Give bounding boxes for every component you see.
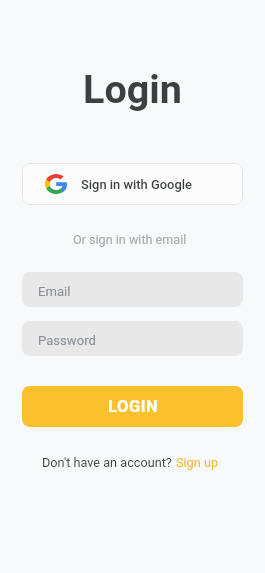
staticText: Or sign in with email — [73, 232, 187, 247]
staticText: Sign up — [176, 455, 219, 470]
button[interactable]: Password — [22, 321, 243, 356]
staticText: LOGIN — [108, 397, 159, 416]
staticText: Sign in with Google — [81, 177, 192, 192]
staticText: Email — [38, 284, 71, 299]
button[interactable]: Email — [22, 272, 243, 307]
staticText: Don't have an account? — [42, 455, 172, 470]
staticText: Password — [38, 333, 96, 348]
button[interactable]: Sign up — [176, 455, 219, 470]
button[interactable]: LOGIN — [22, 386, 243, 427]
staticText: Login — [83, 66, 182, 112]
button[interactable]: Sign in with Google — [22, 163, 243, 205]
